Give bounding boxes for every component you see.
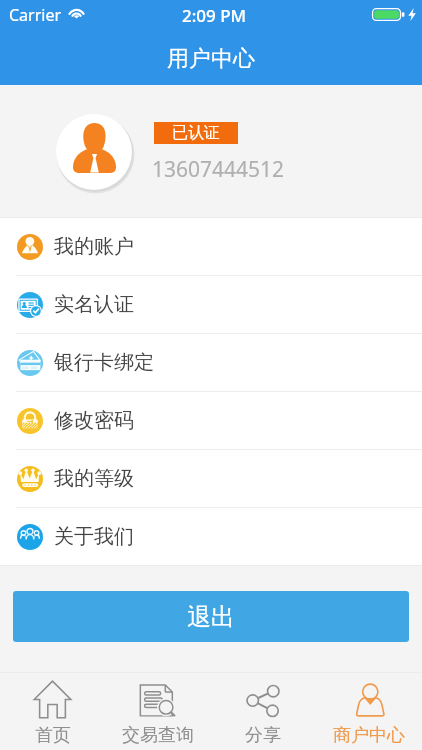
staticText: 商户中心 [333, 724, 405, 747]
staticText: 用户中心 [167, 45, 255, 73]
staticText: 首页 [35, 724, 71, 747]
staticText: 分享 [245, 724, 281, 747]
staticText: 我的等级 [54, 466, 134, 491]
button[interactable]: 首页 [0, 673, 105, 750]
staticText: 13607444512 [152, 155, 285, 184]
staticText: 已认证 [172, 123, 220, 143]
button[interactable]: 分享 [210, 673, 316, 750]
staticText: 银行卡绑定 [54, 350, 154, 375]
staticText: 2:09 PM [182, 4, 247, 27]
button[interactable]: 交易查询 [105, 673, 210, 750]
button[interactable]: 我的等级 [0, 450, 422, 507]
staticText: 实名认证 [54, 292, 134, 317]
button[interactable]: 银行卡绑定 [0, 334, 422, 391]
button[interactable]: 我的账户 [0, 218, 422, 275]
button[interactable]: 关于我们 [0, 508, 422, 565]
staticText: 修改密码 [54, 408, 134, 433]
staticText: Carrier [9, 4, 62, 22]
button[interactable]: 修改密码 [0, 392, 422, 449]
button[interactable]: 商户中心 [316, 673, 422, 750]
staticText: 退出 [187, 602, 235, 632]
staticText: 交易查询 [122, 724, 194, 747]
staticText: 我的账户 [54, 234, 134, 259]
button[interactable]: 退出 [13, 591, 409, 642]
staticText: 关于我们 [54, 524, 134, 549]
button[interactable]: 实名认证 [0, 276, 422, 333]
